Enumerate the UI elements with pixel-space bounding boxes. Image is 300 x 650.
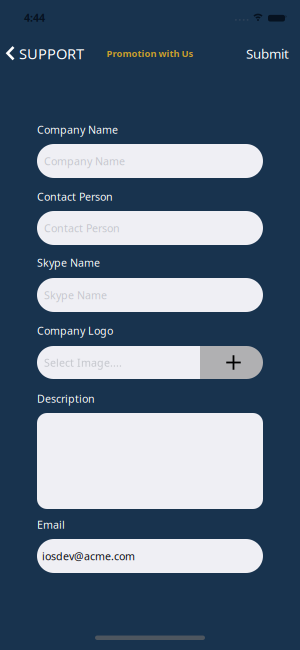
staticText: Skype Name: [37, 255, 100, 270]
button[interactable]: Contact Person: [37, 211, 263, 245]
button[interactable]: Company Name: [37, 144, 263, 178]
staticText: 4:44: [24, 10, 45, 25]
staticText: Contact Person: [44, 221, 120, 235]
staticText: Company Name: [44, 154, 125, 168]
button[interactable]: [37, 413, 263, 509]
staticText: Contact Person: [37, 189, 113, 204]
staticText: Company Logo: [37, 323, 113, 338]
staticText: Submit: [246, 45, 289, 62]
staticText: SUPPORT: [19, 44, 84, 63]
staticText: Skype Name: [44, 288, 107, 302]
staticText: Select Image....: [44, 355, 122, 370]
staticText: iosdev@acme.com: [42, 549, 135, 563]
button[interactable]: Skype Name: [37, 278, 263, 312]
staticText: Company Name: [37, 122, 118, 137]
button[interactable]: Submit: [246, 45, 300, 62]
staticText: Description: [37, 391, 95, 406]
staticText: Promotion with Us: [106, 47, 193, 60]
button[interactable]: iosdev@acme.com: [37, 539, 263, 573]
button[interactable]: SUPPORT: [0, 44, 84, 63]
staticText: Email: [37, 517, 65, 532]
button[interactable]: Select Image....: [37, 346, 263, 379]
